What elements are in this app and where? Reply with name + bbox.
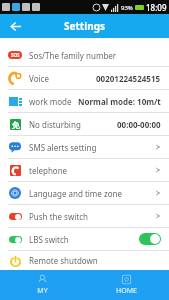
button[interactable]: HOME	[84, 270, 169, 300]
staticText: 免	[12, 120, 20, 130]
staticText: Sos/The family number	[29, 50, 117, 61]
button[interactable]: Push the switch	[0, 205, 169, 228]
staticText: 00201224524515	[96, 73, 161, 84]
button[interactable]: Language and time zone	[0, 182, 169, 205]
staticText: Normal mode: 10m/t	[78, 96, 161, 107]
staticText: HOME	[116, 286, 137, 296]
staticText: Remote shutdown	[29, 255, 98, 266]
button[interactable]: work mode	[0, 90, 169, 113]
button[interactable]: SOS	[0, 44, 169, 67]
button[interactable]: MY	[0, 270, 84, 300]
staticText: work mode	[29, 96, 72, 107]
button[interactable]: telephone	[0, 159, 169, 182]
staticText: Voice	[29, 73, 49, 84]
staticText: Settings	[64, 19, 105, 33]
button[interactable]: SMS alerts setting	[0, 136, 169, 159]
staticText: 93%	[121, 4, 133, 12]
button[interactable]: 免	[0, 113, 169, 136]
button[interactable]: Remote shutdown	[0, 251, 169, 270]
button[interactable]: LBS switch toggle	[139, 233, 161, 245]
staticText: SOS	[11, 52, 20, 58]
staticText: No disturbing	[29, 119, 81, 130]
staticText: 00:00-00:00	[117, 119, 161, 130]
button[interactable]: Back	[0, 14, 30, 38]
staticText: LBS switch	[29, 234, 69, 245]
staticText: Push the switch	[29, 211, 88, 222]
staticText: 18:09	[146, 2, 167, 13]
staticText: MY	[37, 286, 48, 296]
staticText: telephone	[29, 165, 68, 176]
button[interactable]: Voice	[0, 67, 169, 90]
staticText: Language and time zone	[29, 188, 122, 199]
staticText: SMS alerts setting	[29, 142, 97, 153]
button[interactable]: LBS switch	[0, 228, 169, 251]
